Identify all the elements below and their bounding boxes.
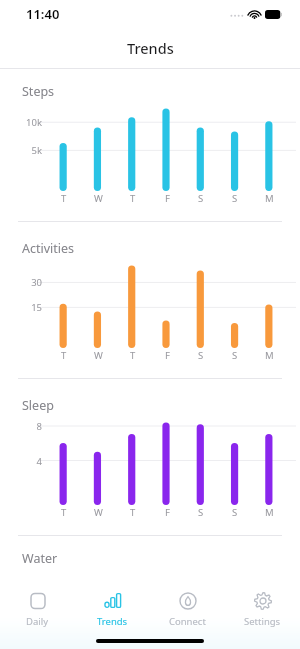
staticText: T: [130, 349, 136, 362]
staticText: Daily: [26, 615, 49, 628]
staticText: Steps: [22, 83, 55, 100]
staticText: 30: [10, 276, 42, 289]
staticText: S: [232, 192, 238, 205]
staticText: M: [265, 192, 274, 205]
staticText: Trends: [127, 38, 174, 58]
staticText: T: [130, 506, 136, 519]
staticText: T: [61, 192, 67, 205]
staticText: S: [232, 506, 238, 519]
staticText: 15: [10, 301, 42, 314]
staticText: S: [198, 506, 204, 519]
staticText: Sleep: [22, 397, 54, 414]
staticText: T: [61, 506, 67, 519]
staticText: F: [165, 192, 170, 205]
staticText: 11:40: [26, 5, 60, 23]
staticText: F: [165, 349, 170, 362]
staticText: M: [265, 349, 274, 362]
staticText: 5k: [10, 144, 42, 157]
staticText: T: [130, 192, 136, 205]
staticText: Settings: [244, 615, 281, 628]
staticText: S: [198, 349, 204, 362]
staticText: W: [94, 349, 103, 362]
staticText: S: [232, 349, 238, 362]
staticText: Water: [22, 550, 58, 567]
staticText: T: [61, 349, 67, 362]
staticText: M: [265, 506, 274, 519]
button[interactable]: Settings: [225, 585, 300, 628]
staticText: F: [165, 506, 170, 519]
staticText: Trends: [97, 615, 128, 628]
staticText: 8: [10, 420, 42, 433]
staticText: Connect: [169, 615, 206, 628]
staticText: 4: [10, 455, 42, 468]
staticText: W: [94, 506, 103, 519]
button[interactable]: Daily: [0, 585, 75, 628]
staticText: 10k: [10, 116, 42, 129]
button[interactable]: Trends: [75, 585, 150, 628]
button[interactable]: Connect: [150, 585, 225, 628]
staticText: W: [94, 192, 103, 205]
staticText: Activities: [22, 240, 75, 257]
staticText: S: [198, 192, 204, 205]
